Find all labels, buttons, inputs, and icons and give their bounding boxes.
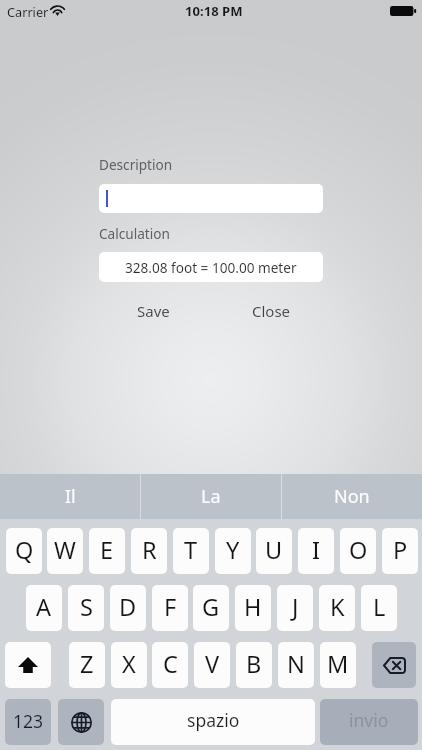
button[interactable]: C	[152, 642, 188, 688]
staticText: H	[244, 591, 262, 623]
staticText: P	[393, 534, 408, 566]
staticText: R	[142, 534, 157, 566]
staticText: 123	[13, 709, 44, 733]
button[interactable]: G	[193, 585, 229, 631]
staticText: M	[327, 648, 349, 680]
staticText: G	[202, 591, 220, 623]
button[interactable]: J	[277, 585, 313, 631]
staticText: T	[184, 534, 198, 566]
button[interactable]: Shift	[5, 642, 51, 688]
button[interactable]: Close	[249, 299, 294, 323]
staticText: 10:18 PM	[185, 2, 243, 20]
button[interactable]: La	[141, 474, 281, 519]
staticText: Z	[80, 648, 94, 680]
button[interactable]: 328.08 foot = 100.00 meter	[99, 252, 323, 282]
staticText: Il	[65, 484, 76, 509]
button[interactable]: Change keyboard	[58, 699, 104, 745]
button[interactable]: X	[111, 642, 147, 688]
staticText: U	[265, 534, 283, 566]
button[interactable]: Q	[6, 528, 42, 574]
button[interactable]: H	[235, 585, 271, 631]
button[interactable]: Y	[215, 528, 251, 574]
button[interactable]: 123	[5, 699, 51, 745]
button[interactable]: Z	[69, 642, 105, 688]
button[interactable]: D	[110, 585, 146, 631]
staticText: Y	[226, 534, 240, 566]
button[interactable]: invio	[320, 699, 418, 745]
staticText: Non	[334, 484, 370, 509]
button[interactable]: K	[319, 585, 355, 631]
button[interactable]: M	[320, 642, 356, 688]
button[interactable]: Non	[282, 474, 422, 519]
staticText: N	[287, 648, 305, 680]
button[interactable]: E	[89, 528, 125, 574]
staticText: Save	[137, 301, 170, 321]
button[interactable]: W	[47, 528, 83, 574]
staticText: F	[164, 591, 177, 623]
staticText: D	[119, 591, 137, 623]
staticText: I	[312, 534, 320, 566]
button[interactable]: Il	[0, 474, 140, 519]
staticText: W	[54, 534, 76, 566]
staticText: La	[201, 484, 221, 509]
staticText: E	[100, 534, 114, 566]
staticText: O	[349, 534, 368, 566]
staticText: L	[373, 591, 386, 623]
button[interactable]: R	[131, 528, 167, 574]
button[interactable]: P	[382, 528, 418, 574]
staticText: A	[36, 591, 52, 623]
button[interactable]: S	[68, 585, 104, 631]
button[interactable]: U	[256, 528, 292, 574]
staticText: S	[80, 591, 93, 623]
staticText: Description	[99, 155, 173, 174]
button[interactable]: O	[340, 528, 376, 574]
button[interactable]: Backspace	[372, 642, 416, 688]
button[interactable]: spazio	[111, 699, 315, 745]
staticText: V	[205, 648, 220, 680]
staticText: Calculation	[99, 224, 170, 243]
button[interactable]: N	[278, 642, 314, 688]
button[interactable]: T	[173, 528, 209, 574]
button[interactable]: L	[361, 585, 397, 631]
staticText: B	[246, 648, 262, 680]
staticText: X	[122, 648, 136, 680]
button[interactable]: V	[194, 642, 230, 688]
button[interactable]	[99, 184, 323, 213]
staticText: Q	[15, 534, 34, 566]
button[interactable]: I	[298, 528, 334, 574]
button[interactable]: F	[152, 585, 188, 631]
staticText: C	[163, 648, 178, 680]
staticText: Close	[252, 301, 291, 321]
button[interactable]: B	[236, 642, 272, 688]
staticText: 328.08 foot = 100.00 meter	[125, 258, 297, 277]
button[interactable]: A	[26, 585, 62, 631]
staticText: spazio	[187, 708, 240, 732]
staticText: J	[292, 591, 299, 623]
button[interactable]: Save	[131, 299, 175, 323]
staticText: Carrier	[7, 3, 49, 20]
staticText: K	[330, 591, 345, 623]
staticText: invio	[349, 708, 389, 732]
